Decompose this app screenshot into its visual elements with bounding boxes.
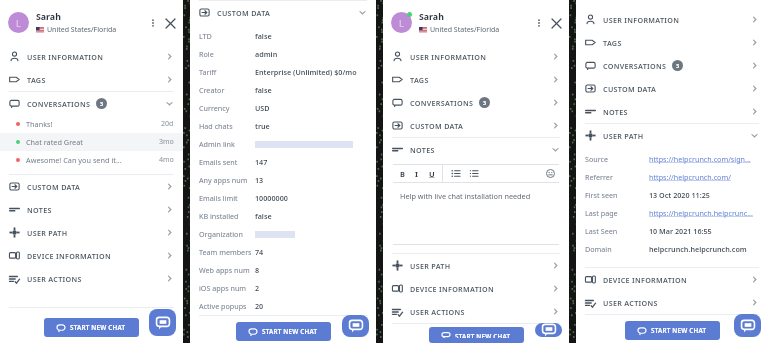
- staticText: Last Seen: [585, 226, 649, 236]
- button[interactable]: DEVICE INFORMATION: [576, 268, 768, 291]
- staticText: NOTES: [27, 205, 52, 215]
- staticText: 3: [483, 99, 487, 106]
- staticText: USER INFORMATION: [410, 52, 487, 62]
- staticText: DEVICE INFORMATION: [410, 284, 494, 294]
- button[interactable]: USER PATH: [383, 254, 569, 277]
- staticText: L: [16, 17, 21, 29]
- button[interactable]: Open chat: [342, 315, 369, 337]
- staticText: false: [255, 31, 272, 41]
- button[interactable]: USER PATH: [0, 221, 183, 244]
- staticText: false: [255, 211, 272, 221]
- staticText: 74: [255, 247, 264, 257]
- button[interactable]: Open chat: [149, 309, 176, 336]
- button[interactable]: START NEW CHAT: [625, 321, 720, 340]
- staticText: 10 Mar 2021 16:55: [649, 226, 712, 236]
- staticText: https://helpcrunch.com/sign...: [649, 154, 751, 164]
- button[interactable]: USER INFORMATION: [0, 45, 183, 68]
- staticText: Last page: [585, 208, 649, 218]
- staticText: Tariff: [199, 67, 255, 77]
- staticText: USD: [255, 103, 270, 113]
- staticText: CUSTOM DATA: [603, 84, 657, 94]
- staticText: Help with live chat installation needed: [400, 191, 531, 201]
- staticText: 20d: [161, 119, 174, 129]
- staticText: 3: [100, 100, 104, 107]
- staticText: helpcrunch.helpcrunch.com: [649, 244, 747, 254]
- staticText: Web apps num: [199, 265, 255, 275]
- button[interactable]: START NEW CHAT: [44, 318, 139, 337]
- staticText: TAGS: [603, 38, 622, 48]
- staticText: CONVERSATIONS: [27, 99, 91, 109]
- staticText: United States/Florida: [430, 25, 500, 35]
- button[interactable]: Open chat: [734, 314, 761, 337]
- button[interactable]: CUSTOM DATA: [190, 1, 376, 24]
- button[interactable]: More options: [147, 17, 159, 29]
- staticText: 4mo: [159, 155, 174, 165]
- button[interactable]: Close: [164, 17, 176, 29]
- button[interactable]: TAGS: [0, 68, 183, 91]
- button[interactable]: Close: [550, 17, 562, 29]
- staticText: Emails limit: [199, 193, 255, 203]
- button[interactable]: DEVICE INFORMATION: [0, 244, 183, 267]
- button[interactable]: TAGS: [383, 68, 569, 91]
- button[interactable]: USER PATH: [576, 124, 768, 147]
- button[interactable]: START NEW CHAT: [429, 327, 524, 343]
- button[interactable]: USER ACTIONS: [576, 291, 768, 314]
- staticText: 147: [255, 157, 268, 167]
- button[interactable]: START NEW CHAT: [236, 322, 331, 341]
- staticText: Any apps num: [199, 175, 255, 185]
- button[interactable]: NOTES: [383, 138, 569, 161]
- button[interactable]: USER INFORMATION: [383, 45, 569, 68]
- staticText: CUSTOM DATA: [27, 182, 81, 192]
- staticText: 20: [255, 301, 264, 311]
- staticText: 3mo: [159, 137, 174, 147]
- staticText: Sarah: [419, 11, 444, 23]
- staticText: admin: [255, 49, 278, 59]
- button[interactable]: NOTES: [576, 100, 768, 123]
- staticText: https://helpcrunch.helpcrunc...: [649, 208, 753, 218]
- staticText: CONVERSATIONS: [603, 61, 667, 71]
- staticText: START NEW CHAT: [262, 327, 318, 336]
- button[interactable]: CUSTOM DATA: [0, 175, 183, 198]
- button[interactable]: TAGS: [576, 31, 768, 54]
- staticText: START NEW CHAT: [70, 323, 126, 332]
- button[interactable]: CUSTOM DATA: [383, 114, 569, 137]
- staticText: I: [415, 169, 418, 179]
- staticText: Team members: [199, 247, 255, 257]
- button[interactable]: USER ACTIONS: [383, 300, 569, 323]
- staticText: 10000000: [255, 193, 288, 203]
- button[interactable]: CONVERSATIONS: [576, 54, 768, 77]
- staticText: Sarah: [36, 11, 61, 23]
- staticText: 13: [255, 175, 264, 185]
- staticText: Thanks!: [26, 119, 161, 129]
- button[interactable]: CUSTOM DATA: [576, 77, 768, 100]
- staticText: United States/Florida: [47, 25, 117, 35]
- button[interactable]: USER ACTIONS: [0, 267, 183, 290]
- button[interactable]: Chat rated Great: [0, 133, 183, 151]
- staticText: Enterprise (Unlimited) $0/mo: [255, 67, 357, 77]
- staticText: KB installed: [199, 211, 255, 221]
- button[interactable]: Awesome! Can you send it...: [0, 151, 183, 169]
- staticText: TAGS: [27, 75, 46, 85]
- button[interactable]: DEVICE INFORMATION: [383, 277, 569, 300]
- staticText: DEVICE INFORMATION: [603, 275, 687, 285]
- staticText: TAGS: [410, 75, 429, 85]
- staticText: USER INFORMATION: [603, 15, 680, 25]
- staticText: CONVERSATIONS: [410, 98, 474, 108]
- button[interactable]: USER INFORMATION: [576, 8, 768, 31]
- staticText: USER PATH: [410, 261, 451, 271]
- staticText: Awesome! Can you send it...: [26, 155, 159, 165]
- staticText: 8: [255, 265, 260, 275]
- staticText: L: [399, 17, 404, 29]
- button[interactable]: Thanks!: [0, 115, 183, 133]
- staticText: USER INFORMATION: [27, 52, 104, 62]
- button[interactable]: More options: [533, 17, 545, 29]
- button[interactable]: NOTES: [0, 198, 183, 221]
- staticText: Emails sent: [199, 157, 255, 167]
- button[interactable]: Open chat: [535, 323, 562, 337]
- staticText: true: [255, 121, 270, 131]
- button[interactable]: CONVERSATIONS: [383, 91, 569, 114]
- button[interactable]: CONVERSATIONS: [0, 92, 183, 115]
- staticText: U: [429, 169, 435, 179]
- staticText: 2: [255, 283, 260, 293]
- staticText: USER ACTIONS: [410, 307, 465, 317]
